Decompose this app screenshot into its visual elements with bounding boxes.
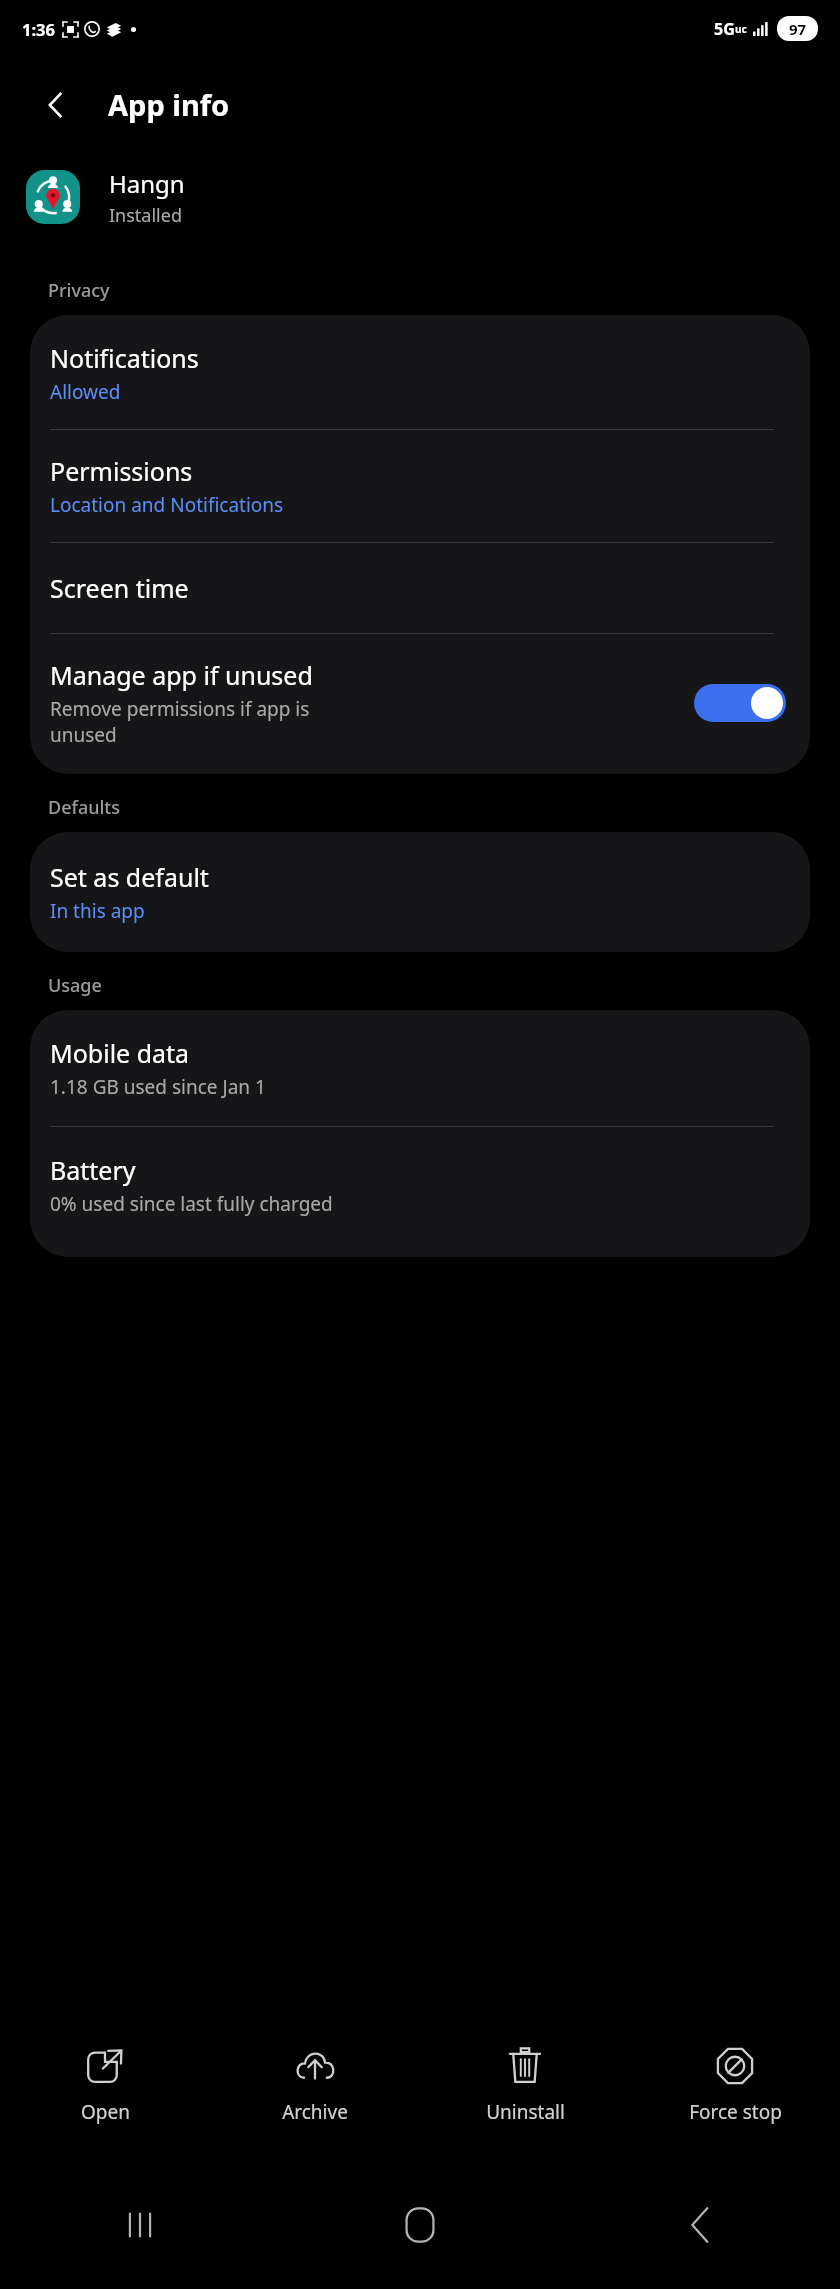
button[interactable]: Notifications [30,315,810,429]
staticText: Allowed [50,379,121,405]
button[interactable]: Mobile data [30,1010,810,1126]
staticText: Force stop [689,2099,782,2125]
staticText: 97 [789,19,807,39]
button[interactable]: Home [280,2160,560,2289]
staticText: Battery [50,1153,136,1187]
staticText: Location and Notifications [50,492,284,518]
staticText: Uninstall [486,2099,565,2125]
staticText: Archive [282,2099,348,2125]
staticText: Defaults [48,795,120,820]
staticText: Usage [48,973,102,998]
staticText: 5G [714,18,735,40]
button[interactable]: Manage app if unused toggle [694,684,786,722]
button[interactable]: Back [560,2160,840,2289]
staticText: Screen time [50,571,189,605]
button[interactable]: Set as default [30,832,810,952]
button[interactable]: Force stop [630,2025,840,2160]
button[interactable]: Permissions [30,430,810,542]
button[interactable]: Manage app if unused [30,634,810,774]
button[interactable]: Archive [210,2025,420,2160]
staticText: Set as default [50,860,209,894]
staticText: Hangn [109,167,185,200]
staticText: uc [735,22,747,36]
button[interactable]: Recents [0,2160,280,2289]
staticText: Privacy [48,278,110,303]
button[interactable]: Screen time [30,543,810,633]
staticText: Remove permissions if app is unused [50,696,310,748]
staticText: 1:36 [22,18,55,40]
staticText: Installed [109,203,182,228]
staticText: Open [81,2099,130,2125]
button[interactable]: Uninstall [420,2025,630,2160]
staticText: Mobile data [50,1036,190,1070]
staticText: In this app [50,898,145,924]
staticText: 0% used since last fully charged [50,1191,333,1217]
staticText: Notifications [50,341,199,375]
staticText: App info [108,85,230,124]
staticText: Permissions [50,454,193,488]
staticText: Manage app if unused [50,658,313,692]
button[interactable]: Battery [30,1127,810,1257]
staticText: 1.18 GB used since Jan 1 [50,1074,266,1100]
button[interactable]: Back [30,79,82,131]
button[interactable]: Open [0,2025,210,2160]
